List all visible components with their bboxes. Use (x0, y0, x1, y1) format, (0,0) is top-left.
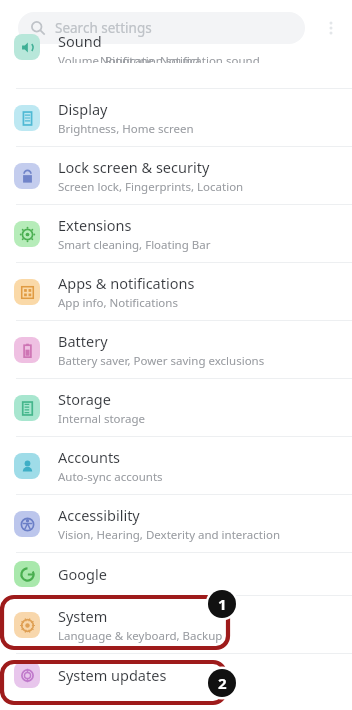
button[interactable]: System updates (0, 654, 352, 696)
button[interactable]: Lock screen & security (0, 147, 352, 204)
staticText: App info, Notifications (58, 295, 178, 311)
staticText: Accessibility (58, 505, 140, 525)
staticText: Display (58, 99, 108, 119)
staticText: Notification sound (100, 53, 200, 63)
staticText: Accounts (58, 447, 121, 467)
staticText: Screen lock, Fingerprints, Location (58, 179, 244, 195)
staticText: Apps & notifications (58, 273, 195, 293)
staticText: Google (58, 564, 107, 584)
staticText: Language & keyboard, Backup (58, 628, 223, 644)
staticText: System updates (58, 665, 167, 685)
staticText: Brightness, Home screen (58, 121, 194, 137)
staticText: Extensions (58, 215, 132, 235)
button[interactable]: Storage (0, 379, 352, 436)
button[interactable]: Sound (0, 31, 352, 63)
staticText: Lock screen & security (58, 157, 210, 177)
staticText: Storage (58, 389, 111, 409)
staticText: Search settings (55, 19, 152, 37)
staticText: Battery (58, 331, 108, 351)
button[interactable]: System (0, 596, 352, 653)
staticText: System (58, 606, 108, 626)
button[interactable]: Extensions (0, 205, 352, 262)
staticText: Volume, Ringtone, Notification sound (58, 53, 260, 63)
button[interactable]: Accessibility (0, 495, 352, 552)
staticText: Internal storage (58, 411, 146, 427)
button[interactable]: Accounts (0, 437, 352, 494)
staticText: Vision, Hearing, Dexterity and interacti… (58, 527, 281, 543)
staticText: 1 (218, 594, 227, 614)
button[interactable]: Search settings (18, 12, 305, 44)
button[interactable]: Google (0, 553, 352, 595)
staticText: Sound (58, 31, 102, 51)
staticText: Smart cleaning, Floating Bar (58, 237, 211, 253)
button[interactable]: Display (0, 89, 352, 146)
button[interactable]: Apps & notifications (0, 263, 352, 320)
button[interactable]: Battery (0, 321, 352, 378)
staticText: 2 (218, 673, 227, 693)
staticText: Battery saver, Power saving exclusions (58, 353, 265, 369)
staticText: Auto-sync accounts (58, 469, 163, 485)
